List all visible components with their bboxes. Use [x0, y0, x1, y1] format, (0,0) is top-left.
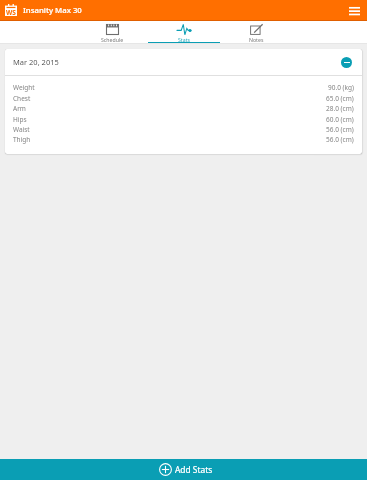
staticText: Mar 20, 2015: [13, 57, 59, 67]
staticText: Add Stats: [175, 464, 213, 475]
staticText: 56.0 (cm): [326, 135, 354, 144]
staticText: Waist: [13, 125, 30, 134]
staticText: Notes: [249, 36, 264, 43]
button[interactable]: Stats: [148, 21, 220, 44]
button[interactable]: Schedule: [76, 21, 148, 44]
staticText: 65.0 (cm): [326, 94, 354, 103]
button[interactable]: Notes: [220, 21, 292, 44]
staticText: WS: [6, 8, 16, 17]
staticText: Weight: [13, 83, 35, 92]
staticText: Chest: [13, 94, 31, 103]
button[interactable]: Collapse: [341, 57, 352, 68]
staticText: 90.0 (kg): [328, 83, 354, 92]
staticText: Thigh: [13, 135, 31, 144]
staticText: Stats: [178, 36, 190, 43]
staticText: Hips: [13, 115, 27, 124]
button[interactable]: Menu: [344, 0, 365, 21]
staticText: Insanity Max 30: [23, 5, 82, 16]
staticText: Arm: [13, 104, 26, 113]
staticText: 60.0 (cm): [326, 115, 354, 124]
button[interactable]: Add Stats: [0, 459, 367, 480]
button[interactable]: Mar 20, 2015: [5, 49, 362, 75]
staticText: Schedule: [101, 36, 124, 43]
staticText: 28.0 (cm): [326, 104, 354, 113]
staticText: 56.0 (cm): [326, 125, 354, 134]
